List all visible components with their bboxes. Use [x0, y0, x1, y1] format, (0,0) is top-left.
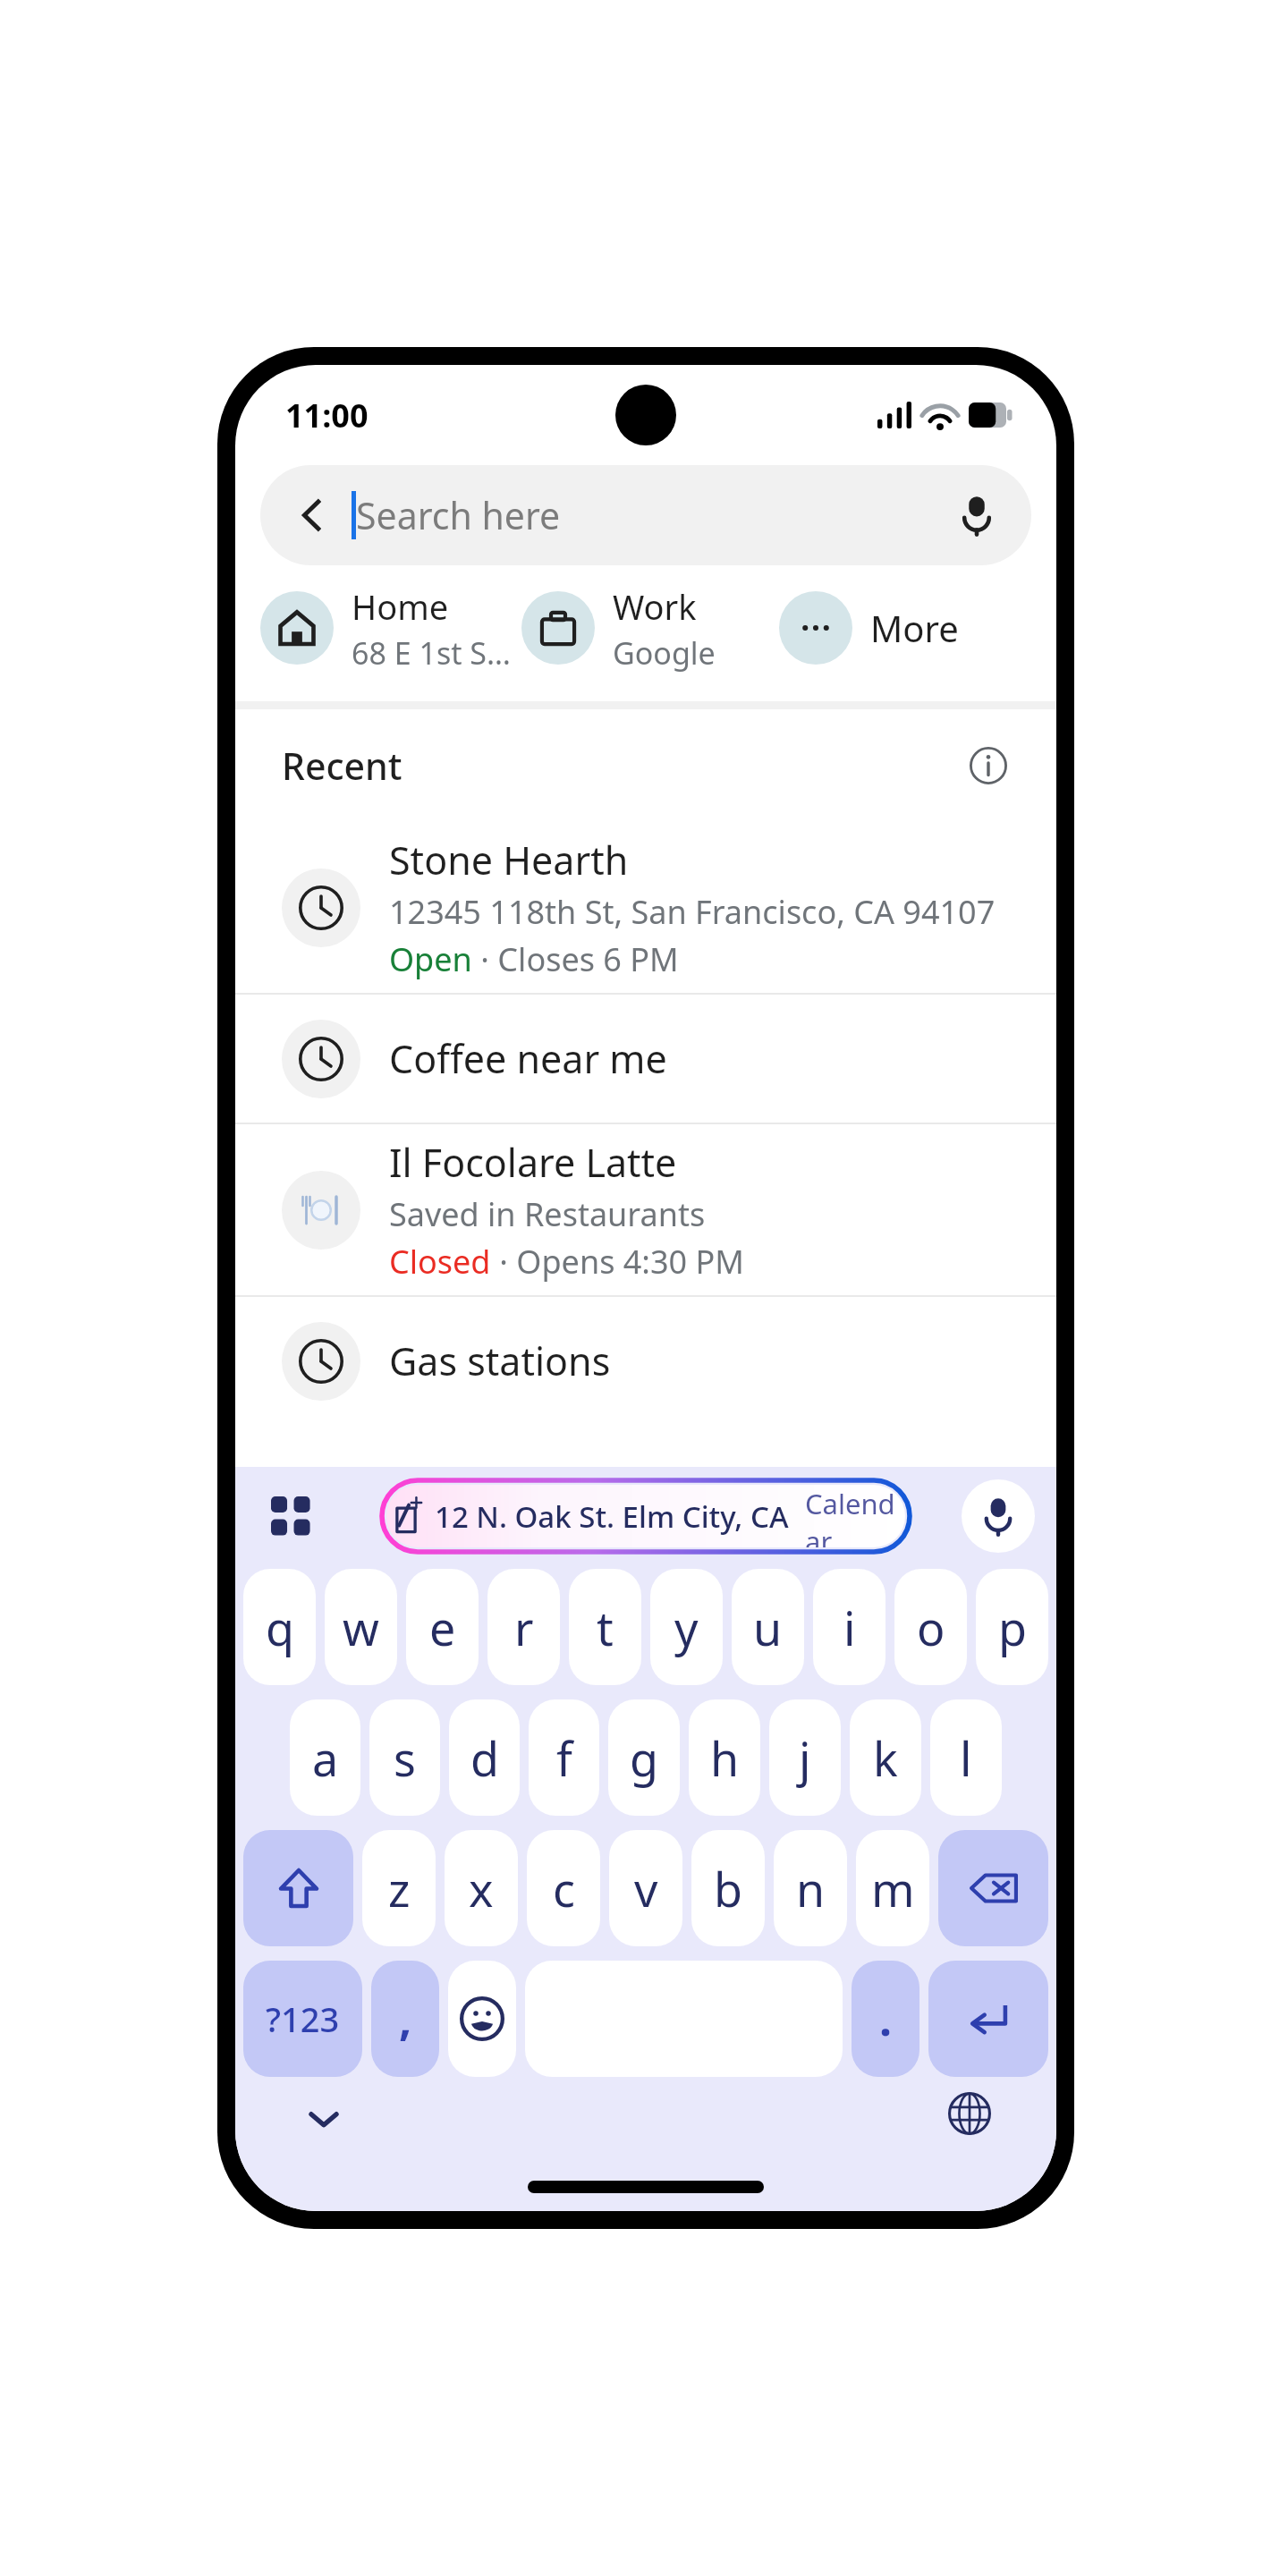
button[interactable]: e	[406, 1569, 479, 1685]
button[interactable]: Work	[521, 572, 779, 683]
staticText: o	[917, 1596, 945, 1659]
button[interactable]: h	[689, 1699, 760, 1816]
button[interactable]: Change keyboard language	[940, 2084, 999, 2143]
button[interactable]: Il Focolare Latte	[235, 1124, 1056, 1295]
button[interactable]: k	[850, 1699, 921, 1816]
staticText: 11:00	[285, 394, 369, 437]
staticText: Open	[389, 937, 472, 981]
staticText: 68 E 1st St...	[352, 632, 521, 674]
staticText: Recent	[282, 741, 402, 791]
staticText: m	[871, 1857, 915, 1920]
staticText: i	[843, 1596, 856, 1659]
staticText: 12 N. Oak St. Elm City, CA	[435, 1496, 789, 1537]
staticText: j	[799, 1726, 811, 1790]
button[interactable]: t	[569, 1569, 641, 1685]
button[interactable]: l	[930, 1699, 1002, 1816]
button[interactable]: Keyboard toolbar	[258, 1484, 323, 1548]
button[interactable]: Backspace	[938, 1830, 1048, 1946]
button[interactable]: y	[650, 1569, 723, 1685]
button[interactable]: r	[487, 1569, 560, 1685]
button[interactable]: v	[609, 1830, 682, 1946]
button[interactable]: ?123	[243, 1961, 362, 2077]
staticText: ?123	[266, 1996, 340, 2042]
button[interactable]: Shift	[243, 1830, 353, 1946]
staticText: Stone Hearth	[389, 834, 629, 886]
button[interactable]: Info	[960, 737, 1017, 794]
button[interactable]: n	[774, 1830, 847, 1946]
staticText: s	[394, 1726, 416, 1790]
staticText: r	[514, 1596, 534, 1659]
staticText: Saved in Restaurants	[389, 1192, 706, 1236]
button[interactable]: Back	[287, 489, 339, 541]
staticText: n	[796, 1857, 826, 1920]
staticText: f	[556, 1726, 572, 1790]
staticText: h	[710, 1726, 740, 1790]
staticText: u	[753, 1596, 783, 1659]
staticText: Il Focolare Latte	[389, 1136, 677, 1189]
staticText: · Opens 4:30 PM	[491, 1240, 744, 1284]
button[interactable]: a	[290, 1699, 360, 1816]
button[interactable]: j	[769, 1699, 841, 1816]
staticText: p	[998, 1596, 1027, 1659]
button[interactable]: Gas stations	[235, 1297, 1056, 1425]
staticText: g	[630, 1726, 658, 1790]
staticText: a	[312, 1726, 339, 1790]
button[interactable]: More	[779, 572, 1031, 683]
button[interactable]: w	[325, 1569, 397, 1685]
staticText: q	[266, 1596, 294, 1659]
staticText: Search here	[356, 490, 561, 540]
button[interactable]: f	[529, 1699, 599, 1816]
staticText: y	[674, 1596, 699, 1659]
staticText: More	[870, 604, 959, 652]
button[interactable]: Enter	[928, 1961, 1048, 2077]
staticText: d	[470, 1726, 499, 1790]
staticText: z	[388, 1857, 411, 1920]
staticText: Closed	[389, 1240, 491, 1284]
button[interactable]: g	[608, 1699, 680, 1816]
staticText: x	[469, 1857, 494, 1920]
staticText: e	[429, 1596, 456, 1659]
staticText: w	[343, 1596, 379, 1659]
staticText: c	[553, 1857, 575, 1920]
button[interactable]: Hide keyboard	[294, 2089, 353, 2148]
button[interactable]: Back	[260, 465, 1031, 565]
staticText: ,	[399, 1988, 412, 2049]
staticText: .	[879, 1988, 893, 2049]
staticText: · Closes 6 PM	[472, 937, 679, 981]
staticText: v	[634, 1857, 658, 1920]
button[interactable]: d	[449, 1699, 520, 1816]
button[interactable]: Space	[525, 1961, 843, 2077]
button[interactable]: m	[856, 1830, 929, 1946]
button[interactable]: u	[732, 1569, 804, 1685]
button[interactable]: Voice input	[962, 1479, 1035, 1553]
button[interactable]: z	[362, 1830, 436, 1946]
button[interactable]: 12 N. Oak St. Elm City, CA	[386, 1485, 905, 1547]
button[interactable]: Stone Hearth	[235, 822, 1056, 993]
staticText: b	[714, 1857, 742, 1920]
button[interactable]: i	[813, 1569, 885, 1685]
button[interactable]: b	[691, 1830, 765, 1946]
button[interactable]: Voice search	[951, 489, 1003, 541]
button[interactable]: p	[976, 1569, 1048, 1685]
button[interactable]: o	[894, 1569, 967, 1685]
button[interactable]: s	[369, 1699, 440, 1816]
staticText: 12345 118th St, San Francisco, CA 94107	[389, 890, 996, 934]
button[interactable]: c	[527, 1830, 600, 1946]
staticText: Google	[613, 632, 716, 674]
staticText: l	[960, 1726, 972, 1790]
staticText: Home	[352, 583, 449, 630]
button[interactable]: q	[243, 1569, 316, 1685]
button[interactable]: .	[852, 1961, 919, 2077]
staticText: k	[873, 1726, 898, 1790]
button[interactable]: ,	[371, 1961, 439, 2077]
button[interactable]: Emoji	[448, 1961, 516, 2077]
button[interactable]: Coffee near me	[235, 995, 1056, 1123]
staticText: Calendar	[805, 1485, 905, 1547]
staticText: Gas stations	[389, 1335, 611, 1387]
button[interactable]: x	[445, 1830, 518, 1946]
staticText: Coffee near me	[389, 1032, 667, 1085]
staticText: Work	[613, 583, 697, 630]
staticText: t	[597, 1596, 614, 1659]
button[interactable]: Home	[260, 572, 521, 683]
